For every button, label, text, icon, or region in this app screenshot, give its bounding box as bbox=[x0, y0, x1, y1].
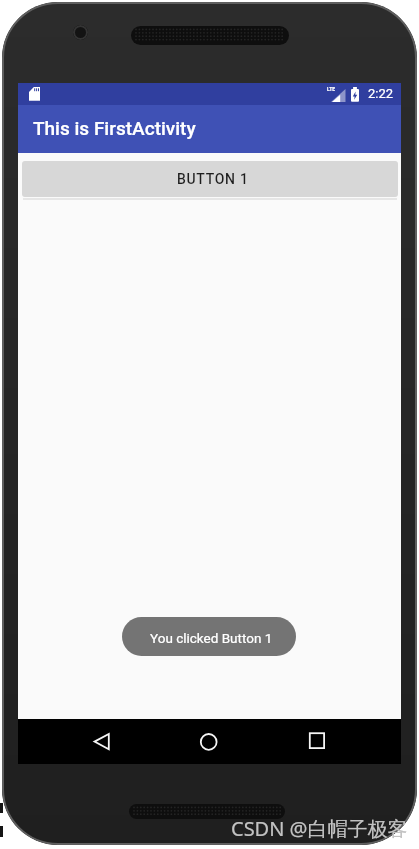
staticText: LTE bbox=[327, 86, 336, 92]
staticText: This is FirstActivity bbox=[33, 117, 196, 139]
staticText: 2:22 bbox=[368, 86, 394, 101]
staticText: CSDN @白帽子极客 bbox=[231, 815, 408, 842]
button[interactable] bbox=[84, 723, 140, 760]
staticText: BUTTON 1 bbox=[177, 171, 249, 187]
staticText: You clicked Button 1 bbox=[150, 630, 273, 646]
button[interactable] bbox=[182, 723, 238, 760]
button[interactable]: BUTTON 1 bbox=[22, 161, 398, 197]
button[interactable] bbox=[286, 723, 342, 760]
